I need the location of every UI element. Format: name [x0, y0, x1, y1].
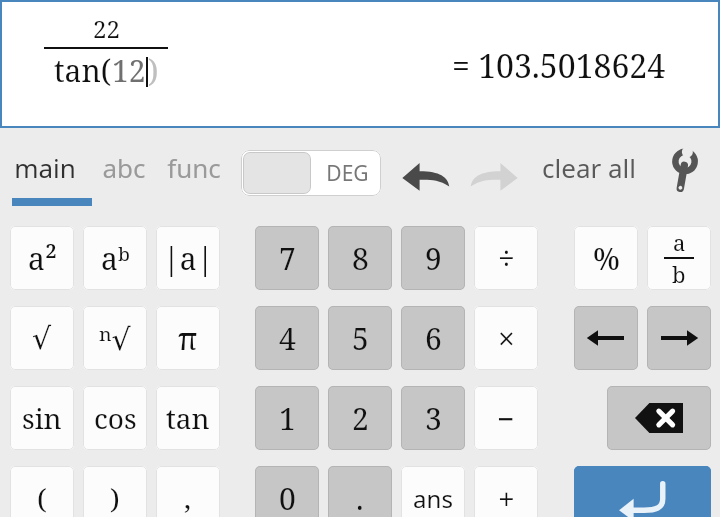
button[interactable]: 8 — [328, 226, 392, 290]
staticText: b — [672, 259, 686, 289]
staticText: aᵇ — [101, 238, 130, 279]
button[interactable]: % — [574, 226, 638, 290]
staticText: sin — [22, 399, 62, 437]
staticText: main — [14, 150, 76, 185]
button[interactable]: 5 — [328, 306, 392, 370]
staticText: abc — [102, 150, 146, 185]
button[interactable]: , — [156, 466, 220, 517]
staticText: % — [593, 238, 620, 279]
button[interactable]: tan — [156, 386, 220, 450]
button[interactable]: Settings — [660, 150, 706, 196]
staticText: a — [673, 227, 686, 257]
staticText: π — [178, 318, 198, 359]
staticText: ÷ — [498, 238, 515, 279]
button[interactable]: ) — [83, 466, 147, 517]
button[interactable]: ( — [10, 466, 74, 517]
button[interactable]: abc — [100, 150, 148, 185]
staticText: 0 — [279, 478, 296, 517]
button[interactable]: ⁿ√ — [83, 306, 147, 370]
button[interactable]: 9 — [401, 226, 465, 290]
staticText: 1 — [279, 398, 296, 439]
staticText: 6 — [425, 318, 442, 359]
button[interactable]: Enter — [574, 466, 711, 517]
button[interactable]: 4 — [255, 306, 319, 370]
button[interactable]: . — [328, 466, 392, 517]
button[interactable]: a² — [10, 226, 74, 290]
staticText: |a| — [163, 238, 214, 279]
staticText: 4 — [279, 318, 296, 359]
staticText: tan — [166, 399, 210, 437]
staticText: 2 — [352, 398, 369, 439]
staticText: 8 — [352, 238, 369, 279]
button[interactable]: − — [474, 386, 538, 450]
staticText: − — [497, 398, 515, 439]
staticText: √ — [32, 321, 52, 356]
staticText: 7 — [279, 238, 296, 279]
button[interactable]: sin — [10, 386, 74, 450]
staticText: tan( — [54, 50, 112, 91]
staticText: ) — [110, 479, 120, 517]
staticText: × — [498, 318, 515, 359]
button[interactable]: × — [474, 306, 538, 370]
button[interactable]: 0 — [255, 466, 319, 517]
button[interactable]: ans — [401, 466, 465, 517]
button[interactable]: Backspace — [607, 386, 711, 450]
staticText: 22 — [93, 12, 120, 45]
button[interactable]: Move cursor left — [574, 306, 638, 370]
staticText: a² — [28, 238, 57, 279]
button[interactable]: aᵇ — [83, 226, 147, 290]
staticText: 5 — [352, 318, 369, 359]
button[interactable]: cos — [83, 386, 147, 450]
button[interactable]: 7 — [255, 226, 319, 290]
button[interactable]: clear all — [538, 150, 640, 185]
staticText: ) — [148, 50, 159, 91]
button[interactable]: 6 — [401, 306, 465, 370]
button[interactable]: 2 — [328, 386, 392, 450]
button[interactable]: 22 — [0, 0, 720, 128]
staticText: 12 — [112, 50, 146, 91]
button[interactable]: 3 — [401, 386, 465, 450]
button[interactable]: DEG — [241, 150, 381, 196]
button[interactable]: Redo — [468, 152, 522, 194]
button[interactable]: √ — [10, 306, 74, 370]
button[interactable]: 1 — [255, 386, 319, 450]
button[interactable]: + — [474, 466, 538, 517]
button[interactable]: a — [647, 226, 711, 290]
button[interactable]: main — [12, 150, 78, 185]
button[interactable]: |a| — [156, 226, 220, 290]
staticText: cos — [94, 399, 137, 437]
staticText: clear all — [542, 150, 636, 185]
staticText: 9 — [425, 238, 442, 279]
staticText: = 103.5018624 — [452, 44, 666, 88]
staticText: ( — [37, 479, 47, 517]
staticText: DEG — [326, 159, 369, 188]
staticText: ans — [413, 482, 453, 515]
staticText: + — [498, 478, 515, 517]
staticText: ⁿ√ — [99, 318, 131, 359]
staticText: 3 — [425, 398, 442, 439]
staticText: func — [167, 150, 221, 185]
button[interactable]: Move cursor right — [647, 306, 711, 370]
button[interactable]: π — [156, 306, 220, 370]
button[interactable]: func — [165, 150, 223, 185]
staticText: . — [356, 478, 364, 517]
button[interactable]: Undo — [398, 152, 452, 194]
staticText: , — [184, 479, 192, 517]
button[interactable]: ÷ — [474, 226, 538, 290]
